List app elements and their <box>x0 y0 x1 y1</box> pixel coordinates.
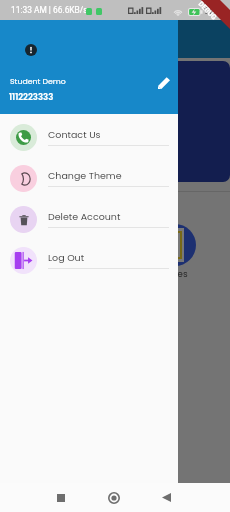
staticText: Contact Us <box>48 128 101 141</box>
staticText: Notes <box>162 268 188 281</box>
button[interactable]: Contact Us <box>0 117 178 158</box>
staticText: DEBUG <box>196 0 218 22</box>
button[interactable]: Recent apps <box>47 483 75 512</box>
staticText: Delete Account <box>48 210 121 223</box>
staticText: Log Out <box>48 251 85 264</box>
button[interactable]: Delete Account <box>0 199 178 240</box>
button[interactable]: Change Theme <box>0 158 178 199</box>
button[interactable]: Edit profile <box>154 73 174 93</box>
staticText: ANSYS <box>42 62 97 82</box>
button[interactable]: Back <box>152 483 180 512</box>
staticText: 1112223333 <box>9 91 54 103</box>
staticText: 11:33 AM | 66.6KB/s <box>11 5 88 15</box>
staticText: Change Theme <box>48 169 122 182</box>
button[interactable]: Log Out <box>0 240 178 281</box>
staticText: 97 <box>204 6 214 16</box>
staticText: 1 <box>58 141 65 154</box>
staticText: DEVELOPER <box>42 79 136 99</box>
button[interactable]: Home <box>100 483 128 512</box>
staticText: Student Demo <box>10 76 66 87</box>
